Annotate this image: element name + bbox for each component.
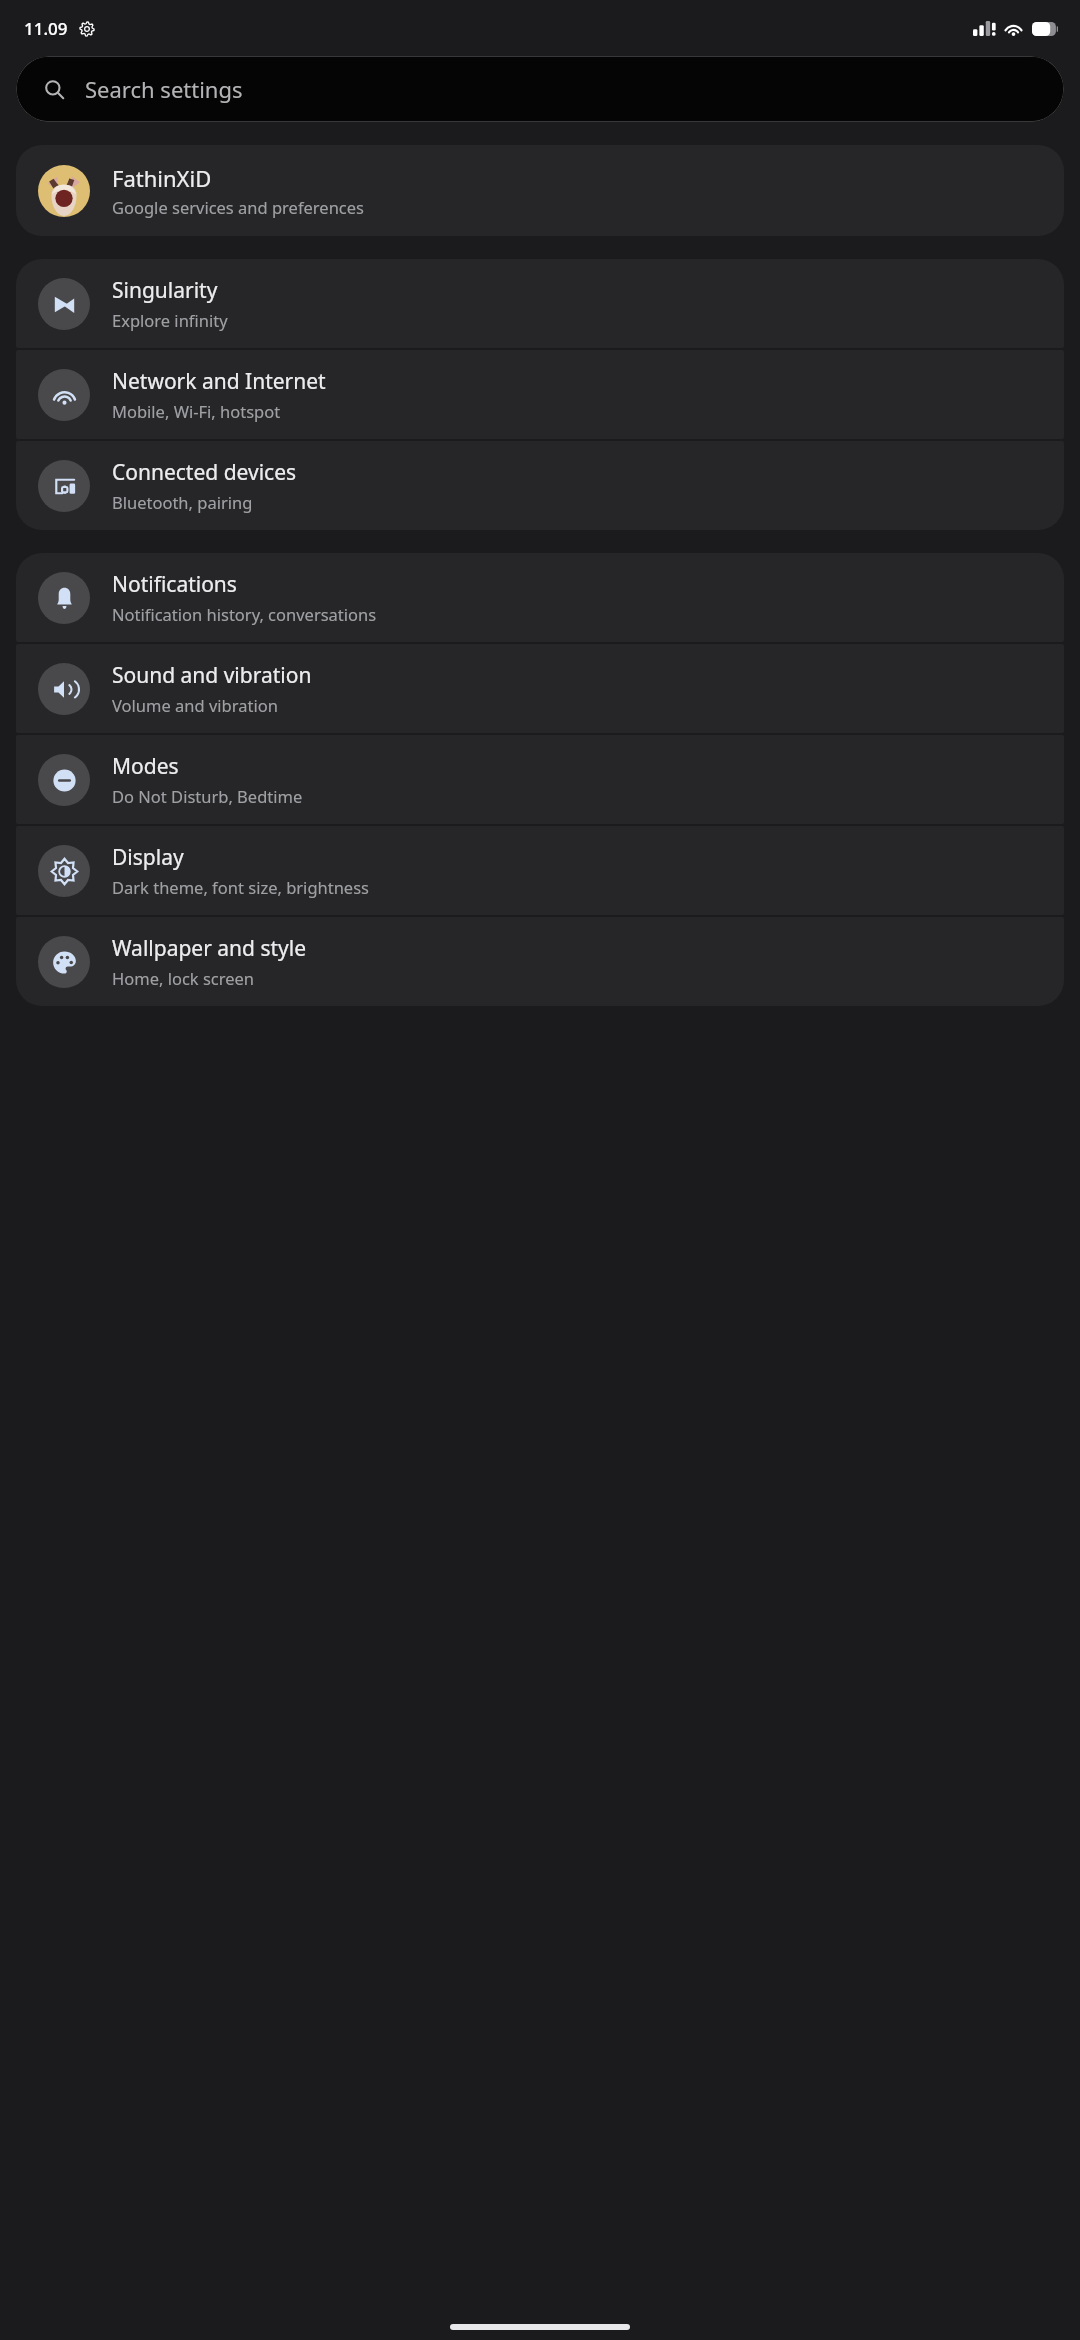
- staticText: Connected devices: [112, 458, 297, 487]
- button[interactable]: Singularity: [16, 259, 1064, 348]
- staticText: Dark theme, font size, brightness: [112, 876, 369, 898]
- staticText: Wallpaper and style: [112, 934, 307, 963]
- staticText: Search settings: [85, 74, 243, 104]
- staticText: Do Not Disturb, Bedtime: [112, 785, 303, 807]
- button[interactable]: Notifications: [16, 553, 1064, 642]
- staticText: Bluetooth, pairing: [112, 491, 253, 513]
- staticText: 11.09: [24, 17, 68, 40]
- staticText: FathinXiD: [112, 163, 212, 193]
- other: Home gesture handle: [450, 2324, 630, 2330]
- staticText: Explore infinity: [112, 309, 228, 331]
- button[interactable]: Wallpaper and style: [16, 917, 1064, 1006]
- button[interactable]: FathinXiD: [16, 145, 1064, 236]
- staticText: Mobile, Wi-Fi, hotspot: [112, 400, 281, 422]
- button[interactable]: Network and Internet: [16, 350, 1064, 439]
- staticText: Singularity: [112, 276, 218, 305]
- staticText: Notification history, conversations: [112, 603, 377, 625]
- button[interactable]: Search settings: [16, 56, 1064, 122]
- staticText: Notifications: [112, 570, 237, 599]
- staticText: Sound and vibration: [112, 661, 312, 690]
- button[interactable]: Display: [16, 826, 1064, 915]
- staticText: Network and Internet: [112, 367, 326, 396]
- button[interactable]: Modes: [16, 735, 1064, 824]
- staticText: Home, lock screen: [112, 967, 255, 989]
- button[interactable]: Connected devices: [16, 441, 1064, 530]
- staticText: Google services and preferences: [112, 196, 364, 218]
- staticText: Display: [112, 843, 184, 872]
- staticText: Modes: [112, 752, 179, 781]
- button[interactable]: Sound and vibration: [16, 644, 1064, 733]
- staticText: Volume and vibration: [112, 694, 278, 716]
